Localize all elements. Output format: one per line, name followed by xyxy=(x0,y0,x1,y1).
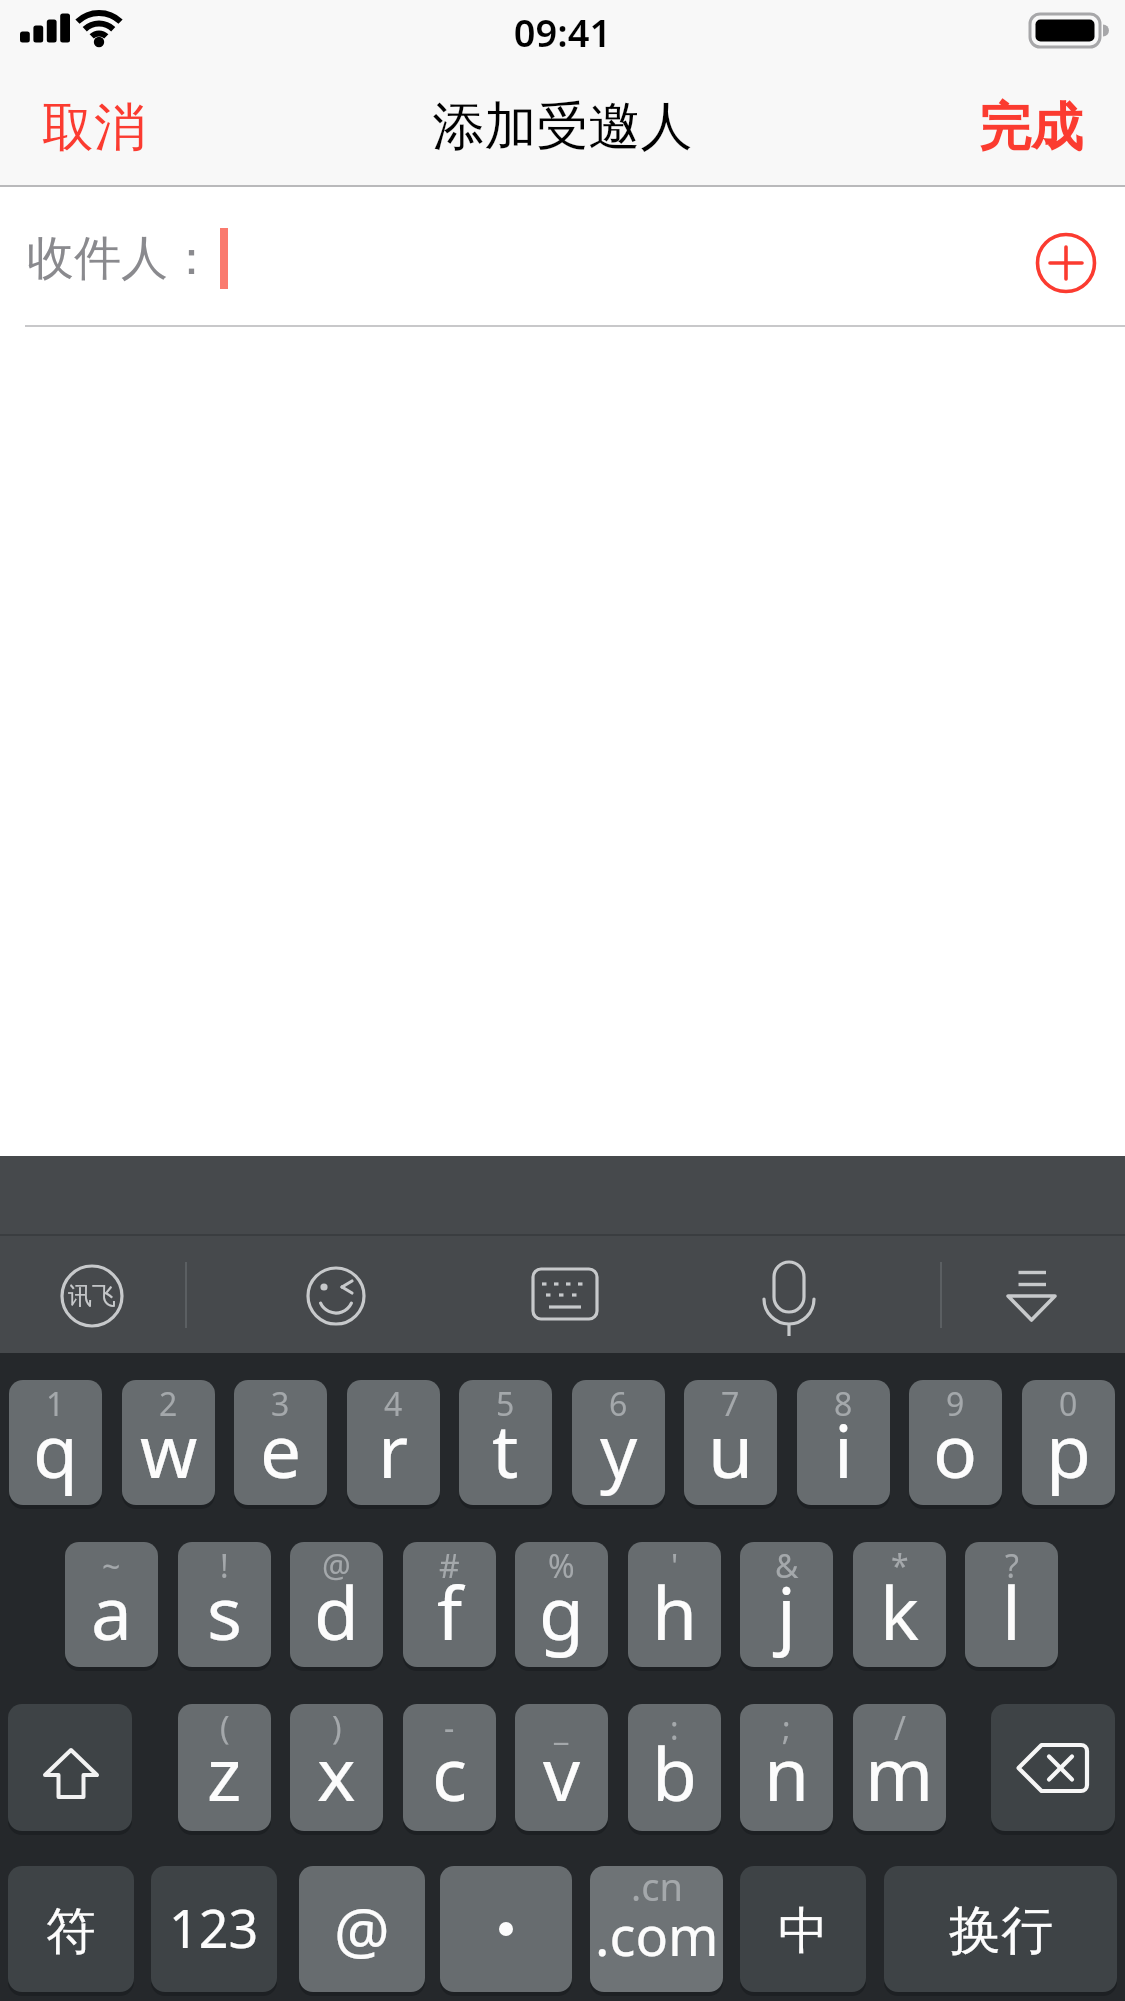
staticText: 完成 xyxy=(979,95,1083,161)
button[interactable] xyxy=(8,1704,132,1831)
staticText: a xyxy=(91,1562,132,1661)
staticText: 中 xyxy=(778,1900,828,1963)
button[interactable] xyxy=(983,1244,1087,1348)
staticText: x xyxy=(317,1723,356,1822)
button[interactable]: 取消 xyxy=(30,88,200,168)
staticText: 符 xyxy=(46,1900,96,1963)
staticText: : xyxy=(670,1706,679,1750)
button[interactable]: & xyxy=(740,1542,833,1667)
staticText: 4 xyxy=(384,1382,403,1426)
staticText: 0 xyxy=(1059,1382,1078,1426)
staticText: 5 xyxy=(496,1382,515,1426)
button[interactable]: 讯飞 xyxy=(40,1244,144,1348)
button[interactable]: 8 xyxy=(797,1380,890,1505)
button[interactable]: 5 xyxy=(459,1380,552,1505)
staticText: j xyxy=(777,1562,796,1661)
staticText: 6 xyxy=(609,1382,628,1426)
staticText: @ xyxy=(322,1544,351,1588)
staticText: 讯飞 xyxy=(68,1281,116,1311)
staticText: f xyxy=(437,1562,463,1661)
staticText: @ xyxy=(334,1887,390,1971)
button[interactable] xyxy=(513,1244,617,1348)
staticText: y xyxy=(600,1400,638,1499)
staticText: ) xyxy=(332,1706,342,1750)
button[interactable]: ! xyxy=(178,1542,271,1667)
button[interactable]: 0 xyxy=(1022,1380,1115,1505)
staticText: r xyxy=(378,1400,409,1499)
staticText: w xyxy=(140,1400,198,1499)
staticText: h xyxy=(652,1562,698,1661)
staticText: - xyxy=(444,1706,455,1750)
staticText: * xyxy=(891,1544,909,1588)
staticText: b xyxy=(652,1723,697,1822)
button[interactable] xyxy=(440,1866,572,1992)
button[interactable]: 9 xyxy=(909,1380,1002,1505)
button[interactable]: ' xyxy=(628,1542,721,1667)
button[interactable]: ( xyxy=(178,1704,271,1831)
button[interactable] xyxy=(737,1244,841,1348)
staticText: e xyxy=(260,1400,302,1499)
staticText: n xyxy=(764,1723,810,1822)
staticText: 7 xyxy=(721,1382,740,1426)
button[interactable]: 3 xyxy=(234,1380,327,1505)
button[interactable] xyxy=(0,187,1010,325)
button[interactable]: 6 xyxy=(572,1380,665,1505)
staticText: z xyxy=(207,1723,242,1822)
staticText: i xyxy=(834,1400,853,1499)
button[interactable]: - xyxy=(403,1704,496,1831)
button[interactable] xyxy=(991,1704,1115,1831)
button[interactable]: / xyxy=(853,1704,946,1831)
staticText: ( xyxy=(220,1706,230,1750)
staticText: ; xyxy=(782,1706,791,1750)
button[interactable]: .cn xyxy=(590,1866,723,1992)
button[interactable]: : xyxy=(628,1704,721,1831)
staticText: 1 xyxy=(46,1382,65,1426)
button[interactable]: ) xyxy=(290,1704,383,1831)
button[interactable]: * xyxy=(853,1542,946,1667)
button[interactable]: 7 xyxy=(684,1380,777,1505)
staticText: m xyxy=(865,1723,934,1822)
staticText: 9 xyxy=(946,1382,965,1426)
button[interactable]: @ xyxy=(299,1866,425,1992)
staticText: 换行 xyxy=(949,1898,1053,1964)
button[interactable]: @ xyxy=(290,1542,383,1667)
button[interactable]: 4 xyxy=(347,1380,440,1505)
staticText: t xyxy=(492,1400,519,1499)
button[interactable]: 完成 xyxy=(925,88,1095,168)
staticText: p xyxy=(1046,1400,1091,1499)
staticText: & xyxy=(775,1544,799,1588)
button[interactable]: ; xyxy=(740,1704,833,1831)
staticText: 添加受邀人 xyxy=(0,94,1125,160)
button[interactable]: 中 xyxy=(740,1866,866,1992)
button[interactable]: 2 xyxy=(122,1380,215,1505)
staticText: q xyxy=(33,1400,78,1499)
staticText: v xyxy=(543,1723,581,1822)
button[interactable] xyxy=(1028,225,1104,301)
staticText: 09:41 xyxy=(0,6,1125,58)
staticText: / xyxy=(894,1706,906,1750)
staticText: g xyxy=(539,1562,584,1661)
staticText: 8 xyxy=(834,1382,853,1426)
button[interactable] xyxy=(284,1244,388,1348)
button[interactable]: 1 xyxy=(9,1380,102,1505)
staticText: d xyxy=(314,1562,359,1661)
staticText: ! xyxy=(220,1544,229,1588)
staticText: 取消 xyxy=(42,95,146,161)
button[interactable]: ? xyxy=(965,1542,1058,1667)
staticText: 3 xyxy=(271,1382,290,1426)
button[interactable]: _ xyxy=(515,1704,608,1831)
button[interactable]: 符 xyxy=(8,1866,134,1992)
staticText: ? xyxy=(1005,1544,1019,1588)
button[interactable]: # xyxy=(403,1542,496,1667)
staticText: .com xyxy=(595,1898,719,1972)
button[interactable]: 123 xyxy=(151,1866,277,1992)
staticText: ' xyxy=(671,1544,679,1588)
staticText: s xyxy=(207,1562,242,1661)
button[interactable]: 换行 xyxy=(884,1866,1117,1992)
staticText: 123 xyxy=(169,1892,259,1963)
button[interactable]: ~ xyxy=(65,1542,158,1667)
staticText: c xyxy=(432,1723,468,1822)
button[interactable]: % xyxy=(515,1542,608,1667)
staticText: .cn xyxy=(631,1860,683,1912)
staticText: # xyxy=(439,1544,460,1588)
